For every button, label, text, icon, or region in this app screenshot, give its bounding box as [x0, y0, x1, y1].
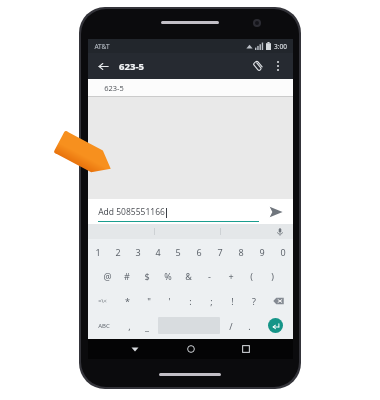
button[interactable]: 8	[230, 240, 251, 264]
staticText: 2	[115, 246, 121, 258]
staticText: ,	[128, 320, 131, 332]
button[interactable]: ?	[243, 288, 264, 313]
staticText: -	[208, 270, 211, 282]
button[interactable]: 6	[188, 240, 209, 264]
staticText: ;	[210, 295, 213, 307]
button[interactable]: )	[262, 264, 283, 288]
staticText: ABC	[98, 322, 110, 330]
staticText: @	[103, 270, 112, 282]
staticText: !	[231, 295, 234, 307]
button[interactable]: @	[97, 264, 117, 288]
staticText: '	[168, 295, 171, 307]
button[interactable]: -	[199, 264, 220, 288]
staticText: 8	[238, 246, 244, 258]
staticText: $	[144, 270, 150, 282]
button[interactable]: Back	[94, 57, 112, 75]
staticText: 3	[135, 246, 141, 258]
staticText: #	[124, 270, 130, 282]
button[interactable]: Send	[266, 202, 286, 222]
staticText: 4	[155, 246, 161, 258]
button[interactable]: Attach file	[248, 57, 266, 75]
button[interactable]: 4	[148, 240, 168, 264]
button[interactable]: Add 5085551166	[98, 202, 259, 222]
staticText: 3:00	[274, 42, 287, 51]
button[interactable]: 3	[128, 240, 148, 264]
staticText: 6	[196, 246, 202, 258]
button[interactable]: 1	[88, 240, 108, 264]
staticText: /	[229, 320, 233, 332]
staticText: AT&T	[94, 42, 110, 51]
button[interactable]: Back	[126, 340, 144, 358]
staticText: Add 5085551166	[98, 206, 165, 218]
staticText: "	[147, 295, 151, 307]
staticText: 9	[259, 246, 265, 258]
button[interactable]: Home	[182, 340, 200, 358]
button[interactable]: 7	[209, 240, 230, 264]
button[interactable]: $	[137, 264, 157, 288]
staticText: _	[145, 320, 149, 332]
button[interactable]: Backspace	[264, 288, 293, 313]
button[interactable]: 623-5	[88, 79, 293, 96]
button[interactable]: 5	[168, 240, 188, 264]
button[interactable]: ;	[201, 288, 222, 313]
staticText: .	[248, 320, 251, 332]
staticText: (	[250, 270, 253, 282]
staticText: &	[185, 270, 192, 282]
staticText: :	[189, 295, 192, 307]
staticText: 623-5	[104, 83, 124, 93]
button[interactable]: *	[117, 288, 138, 313]
button[interactable]: '	[159, 288, 180, 313]
staticText: 0	[280, 246, 286, 258]
staticText: 623-5	[119, 60, 144, 73]
button[interactable]: 2	[108, 240, 128, 264]
button[interactable]: &	[178, 264, 199, 288]
staticText: 7	[217, 246, 223, 258]
button[interactable]: :	[180, 288, 201, 313]
button[interactable]: 9	[251, 240, 272, 264]
button[interactable]: .	[240, 313, 258, 338]
button[interactable]: 0	[272, 240, 293, 264]
button[interactable]: ABC	[88, 313, 120, 338]
button[interactable]: =\<	[88, 288, 117, 313]
button[interactable]: +	[220, 264, 241, 288]
button[interactable]: ,	[120, 313, 138, 338]
staticText: =\<	[98, 297, 107, 304]
button[interactable]: (	[241, 264, 262, 288]
button[interactable]: _	[138, 313, 156, 338]
button[interactable]: "	[138, 288, 159, 313]
staticText: ?	[252, 295, 256, 307]
staticText: )	[271, 270, 274, 282]
button[interactable]: /	[222, 313, 240, 338]
button[interactable]: Enter	[268, 318, 283, 333]
button[interactable]: !	[222, 288, 243, 313]
button[interactable]: Recent apps	[237, 340, 255, 358]
staticText: 5	[175, 246, 181, 258]
staticText: +	[228, 270, 234, 282]
staticText: 1	[95, 246, 101, 258]
staticText: %	[164, 270, 172, 282]
button[interactable]: #	[117, 264, 137, 288]
button[interactable]: %	[157, 264, 178, 288]
button[interactable]: Voice input	[273, 225, 287, 239]
staticText: *	[125, 295, 130, 307]
button[interactable]: More options	[269, 57, 287, 75]
